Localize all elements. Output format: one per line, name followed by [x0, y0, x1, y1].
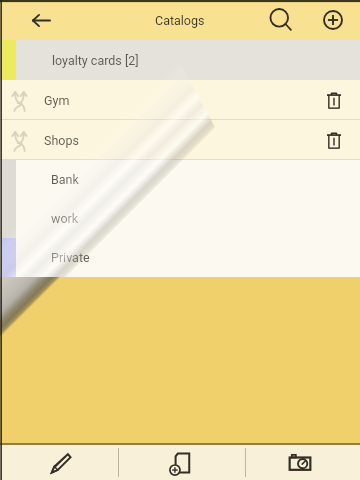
button[interactable]: Camera	[240, 445, 360, 480]
button[interactable]: Delete	[321, 87, 347, 113]
staticText: Bank	[51, 172, 79, 187]
staticText: work	[51, 211, 79, 226]
button[interactable]: Back	[22, 1, 60, 39]
staticText: Catalogs	[155, 13, 205, 28]
staticText: loyalty cards [2]	[52, 53, 139, 68]
button[interactable]: Edit	[0, 445, 120, 480]
button[interactable]: Delete	[321, 127, 347, 153]
staticText: Gym	[44, 93, 70, 108]
button[interactable]: Search	[262, 1, 300, 39]
button[interactable]: Add	[314, 1, 352, 39]
button[interactable]: Gym	[0, 80, 360, 120]
button[interactable]: loyalty cards [2]	[0, 40, 360, 80]
button[interactable]: Shops	[0, 120, 360, 160]
staticText: Private	[51, 250, 90, 265]
button[interactable]: Private	[0, 238, 360, 277]
button[interactable]: New page	[120, 445, 240, 480]
button[interactable]: Bank	[0, 160, 360, 199]
staticText: Shops	[44, 133, 79, 148]
button[interactable]: work	[0, 199, 360, 238]
